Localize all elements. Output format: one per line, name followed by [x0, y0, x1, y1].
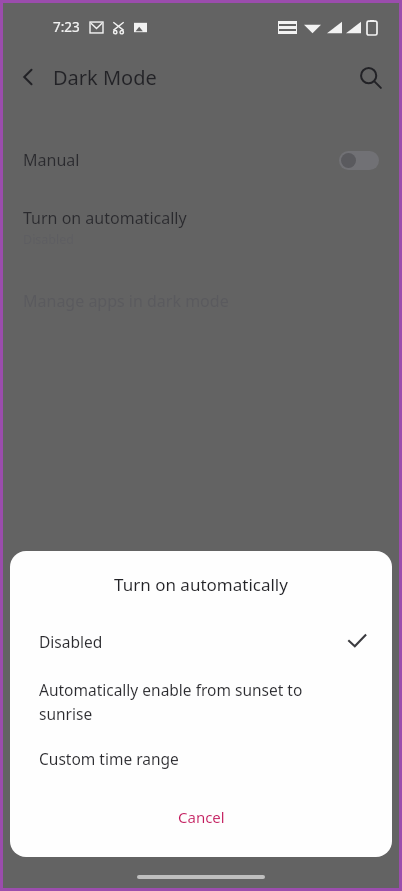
staticText: Custom time range [39, 748, 179, 769]
button[interactable]: Cancel [10, 799, 392, 835]
staticText: Dark Mode [53, 64, 157, 91]
staticText: Automatically enable from sunset to sunr… [39, 679, 352, 724]
button[interactable]: Back [3, 60, 45, 94]
staticText: Turn on automatically [23, 207, 187, 229]
button[interactable]: Manual [3, 141, 399, 179]
button[interactable]: Automatically enable from sunset to sunr… [10, 673, 392, 730]
button[interactable]: Turn on automatically [3, 203, 399, 252]
staticText: Disabled [39, 631, 346, 652]
button[interactable]: Search [349, 58, 399, 97]
staticText: 7:23 [53, 18, 80, 36]
staticText: Manual [23, 149, 339, 171]
staticText: Turn on automatically [10, 573, 392, 596]
button[interactable]: Disabled [10, 621, 392, 661]
button[interactable]: Custom time range [10, 742, 392, 775]
staticText: Cancel [178, 807, 225, 827]
